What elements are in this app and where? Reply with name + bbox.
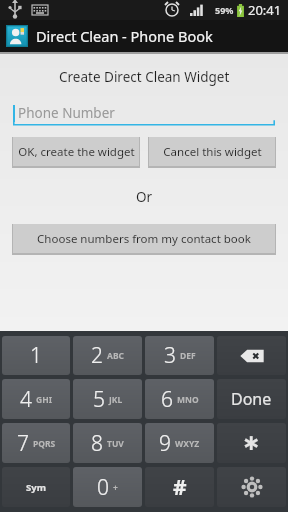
- button[interactable]: Settings: [217, 467, 286, 507]
- staticText: 3: [164, 341, 176, 370]
- button[interactable]: 5: [73, 379, 142, 419]
- staticText: 1: [30, 341, 42, 370]
- button[interactable]: 1: [2, 336, 70, 375]
- button[interactable]: Sym: [2, 467, 70, 507]
- button[interactable]: 3: [145, 336, 214, 375]
- staticText: OK, create the widget: [18, 144, 135, 160]
- staticText: ABC: [107, 350, 124, 362]
- button[interactable]: OK, create the widget: [13, 137, 139, 166]
- staticText: Direct Clean - Phone Book: [36, 26, 213, 46]
- button[interactable]: 0: [73, 467, 142, 507]
- staticText: 9: [159, 429, 171, 458]
- button[interactable]: ∗: [217, 423, 286, 463]
- staticText: 8: [91, 429, 103, 458]
- staticText: 0: [97, 473, 109, 502]
- button[interactable]: Phone Number: [13, 100, 275, 126]
- staticText: #: [173, 473, 187, 502]
- staticText: ∗: [242, 430, 261, 456]
- staticText: DEF: [180, 350, 196, 362]
- staticText: Create Direct Clean Widget: [59, 68, 230, 86]
- button[interactable]: 8: [73, 423, 142, 463]
- staticText: 7: [17, 429, 29, 458]
- staticText: JKL: [109, 394, 123, 406]
- staticText: 20:41: [248, 1, 282, 19]
- staticText: WXYZ: [175, 438, 200, 450]
- button[interactable]: Done: [217, 379, 286, 419]
- staticText: Or: [136, 188, 153, 206]
- staticText: TUV: [107, 438, 124, 450]
- staticText: 4: [20, 385, 32, 414]
- staticText: Phone Number: [18, 104, 115, 122]
- button[interactable]: Backspace: [217, 336, 286, 375]
- staticText: Sym: [26, 481, 46, 494]
- staticText: Choose numbers from my contact book: [37, 231, 251, 247]
- staticText: Cancel this widget: [163, 144, 262, 160]
- staticText: 5: [93, 385, 105, 414]
- staticText: 6: [161, 385, 173, 414]
- button[interactable]: 7: [2, 423, 70, 463]
- staticText: 2: [91, 341, 103, 370]
- button[interactable]: 9: [145, 423, 214, 463]
- button[interactable]: 2: [73, 336, 142, 375]
- staticText: PQRS: [33, 438, 56, 450]
- staticText: 59%: [215, 4, 234, 16]
- staticText: Done: [231, 388, 272, 410]
- staticText: GHI: [36, 394, 52, 406]
- button[interactable]: Cancel this widget: [149, 137, 275, 166]
- staticText: MNO: [177, 394, 199, 406]
- staticText: +: [113, 482, 118, 494]
- button[interactable]: 4: [2, 379, 70, 419]
- button[interactable]: #: [145, 467, 214, 507]
- button[interactable]: Choose numbers from my contact book: [13, 224, 275, 253]
- button[interactable]: 6: [145, 379, 214, 419]
